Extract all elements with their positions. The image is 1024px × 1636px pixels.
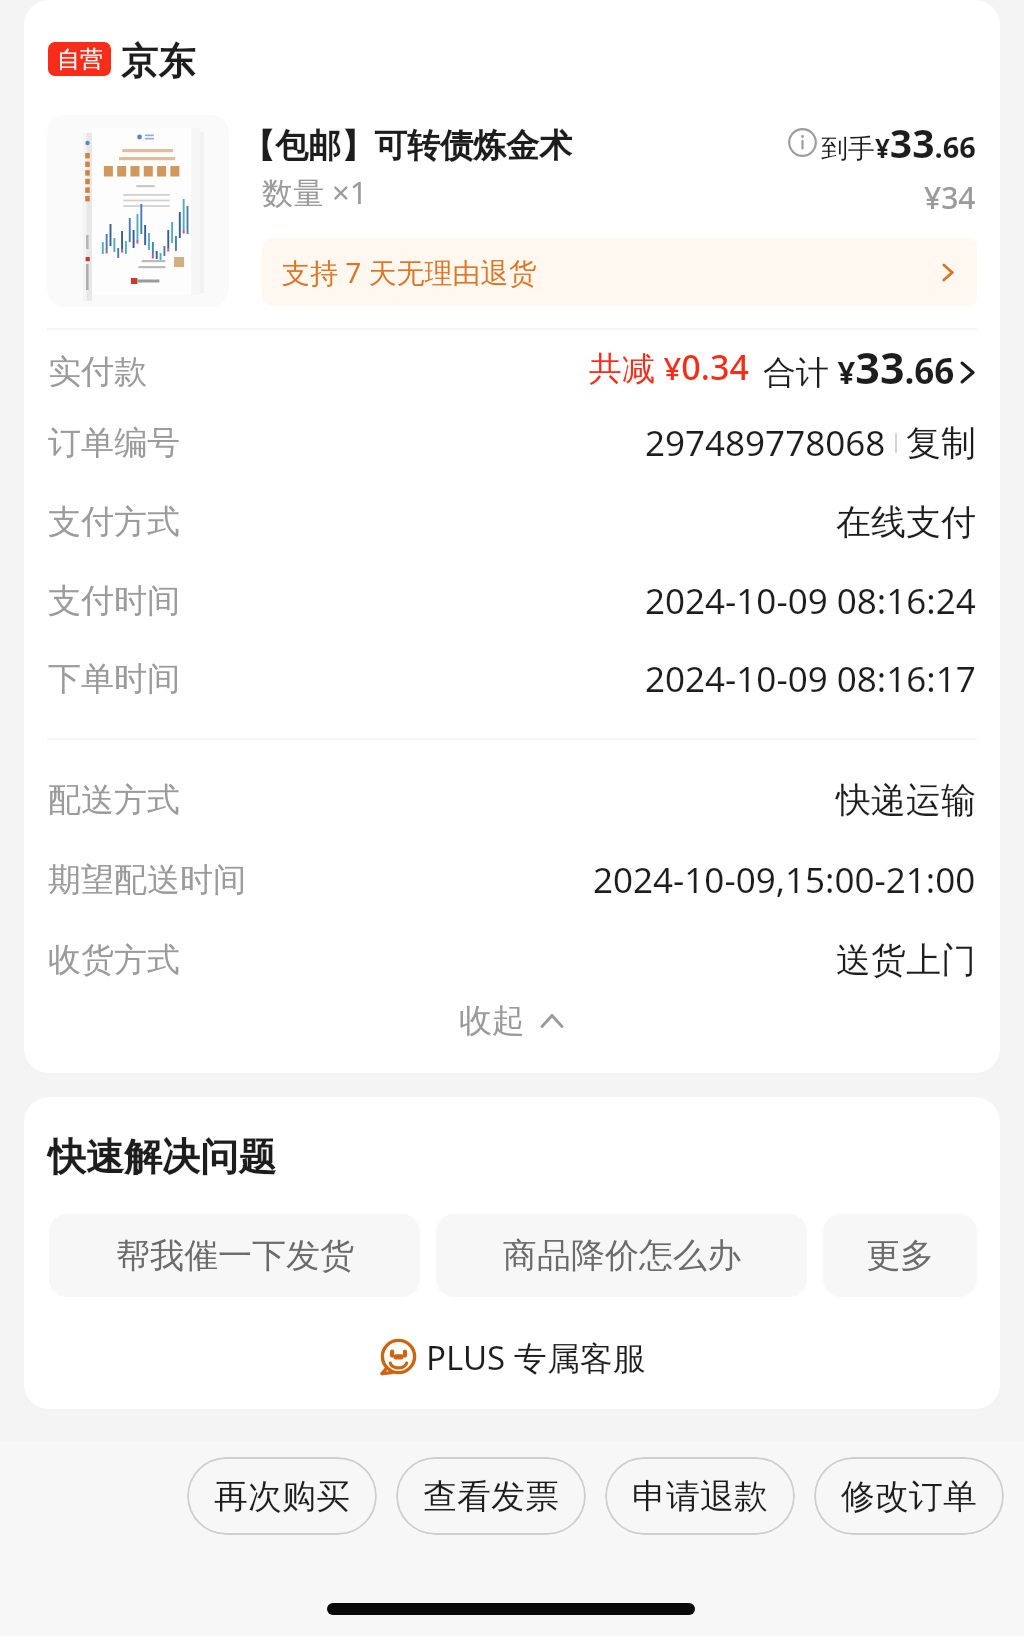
button[interactable]: 自营 <box>48 38 195 85</box>
button[interactable]: PLUS 专属客服 <box>24 1329 1000 1385</box>
staticText: 再次购买 <box>214 1475 350 1518</box>
button[interactable]: 配送方式 <box>48 769 976 831</box>
staticText: 快速解决问题 <box>48 1133 276 1181</box>
button[interactable]: 支持 7 天无理由退货 <box>262 238 977 306</box>
button[interactable] <box>47 112 977 222</box>
staticText: 自营 <box>57 45 103 74</box>
button[interactable]: 收起 <box>24 990 1000 1052</box>
staticText: 2024-10-09 08:16:17 <box>645 655 976 703</box>
button[interactable]: 修改订单 <box>814 1457 1004 1535</box>
button[interactable]: 收货方式 <box>48 929 976 991</box>
staticText: 实付款 <box>48 351 147 393</box>
staticText: 支付方式 <box>48 501 180 543</box>
button[interactable]: 支付时间 <box>48 570 976 632</box>
staticText: 更多 <box>866 1234 934 1277</box>
button[interactable]: 实付款 <box>48 341 976 403</box>
button[interactable]: 商品降价怎么办 <box>436 1214 807 1297</box>
staticText: 送货上门 <box>836 938 976 982</box>
staticText: ¥34 <box>924 177 976 218</box>
button[interactable]: 支付方式 <box>48 491 976 553</box>
staticText: 数量 ×1 <box>262 171 368 213</box>
staticText: 收起 <box>459 1000 525 1042</box>
staticText: 到手¥33.66 <box>821 116 976 169</box>
button[interactable]: 申请退款 <box>605 1457 795 1535</box>
staticText: 【包邮】可转债炼金术 <box>242 125 572 167</box>
staticText: 共减 ¥0.34 <box>589 344 749 390</box>
staticText: 京东 <box>121 38 195 85</box>
staticText: 配送方式 <box>48 779 180 821</box>
staticText: 商品降价怎么办 <box>503 1234 741 1277</box>
staticText: 快递运输 <box>836 778 976 822</box>
button[interactable]: 再次购买 <box>187 1457 377 1535</box>
staticText: 支持 7 天无理由退货 <box>282 253 941 291</box>
staticText: 收货方式 <box>48 939 180 981</box>
button[interactable]: 复制 <box>906 421 976 465</box>
button[interactable]: 帮我催一下发货 <box>49 1214 420 1297</box>
staticText: 下单时间 <box>48 658 180 700</box>
staticText: 期望配送时间 <box>48 859 246 901</box>
button[interactable]: 查看发票 <box>396 1457 586 1535</box>
staticText: 订单编号 <box>48 422 180 464</box>
staticText: 帮我催一下发货 <box>116 1234 354 1277</box>
button[interactable]: 下单时间 <box>48 648 976 710</box>
staticText: 297489778068 <box>645 419 886 467</box>
button[interactable]: 价格说明 <box>788 128 817 157</box>
staticText: 修改订单 <box>841 1475 977 1518</box>
staticText: 合计 ¥33.66 <box>763 338 955 397</box>
staticText: 查看发票 <box>423 1475 559 1518</box>
staticText: 2024-10-09,15:00-21:00 <box>593 856 976 904</box>
staticText: 支付时间 <box>48 580 180 622</box>
button[interactable]: 订单编号 <box>48 412 976 474</box>
button[interactable]: 期望配送时间 <box>48 849 976 911</box>
staticText: PLUS 专属客服 <box>426 1335 646 1380</box>
staticText: 复制 <box>906 421 976 465</box>
staticText: 2024-10-09 08:16:24 <box>645 577 976 625</box>
staticText: 申请退款 <box>632 1475 768 1518</box>
staticText: 在线支付 <box>836 500 976 544</box>
button[interactable]: 更多 <box>823 1214 977 1297</box>
